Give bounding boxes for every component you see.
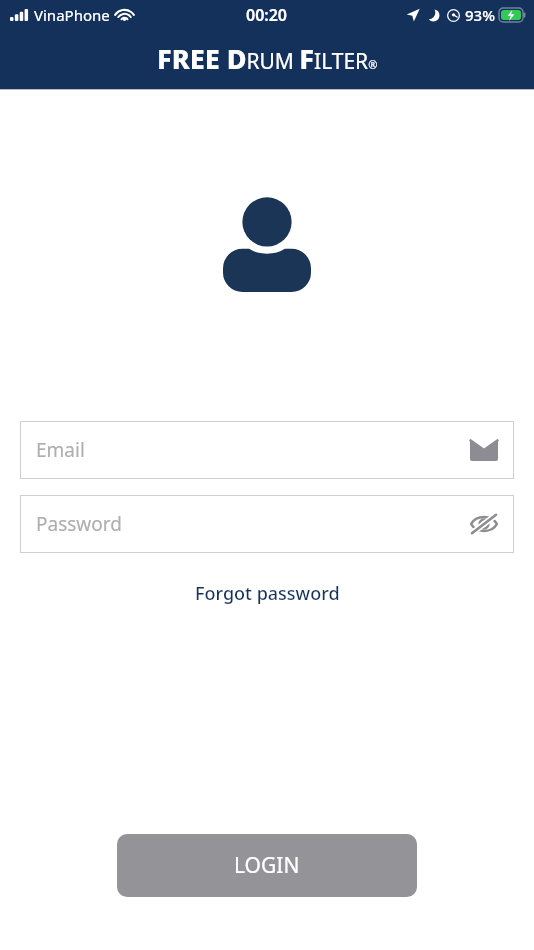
other: Show password [470,510,498,538]
other: Email [470,436,498,464]
button[interactable]: Email [20,421,514,479]
staticText: 00:20 [246,4,288,26]
button[interactable]: Forgot password [187,577,348,610]
staticText: FREE DRUM FILTER® [157,40,378,77]
staticText: VinaPhone [34,5,110,25]
staticText: LOGIN [234,851,300,880]
staticText: Forgot password [195,581,340,606]
staticText: Email [36,437,470,463]
button[interactable]: Password [20,495,514,553]
staticText: 93% [465,5,495,25]
button[interactable]: LOGIN [117,834,417,897]
staticText: Password [36,511,470,537]
